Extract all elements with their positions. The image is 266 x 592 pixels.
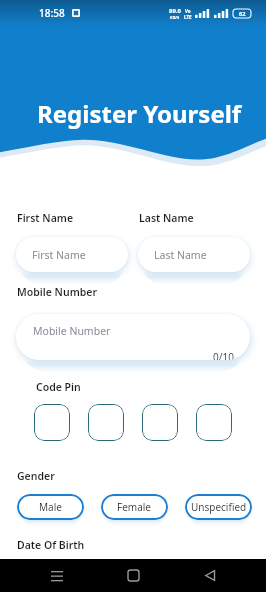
staticText: Vo: [185, 8, 191, 14]
staticText: Register Yourself: [37, 97, 242, 130]
staticText: Unspecified: [191, 500, 247, 514]
staticText: LTE: [184, 14, 192, 20]
staticText: 89.0: [169, 7, 181, 15]
staticText: KB/S: [170, 15, 180, 20]
button[interactable]: Female: [101, 494, 168, 520]
button[interactable]: Male: [17, 494, 84, 520]
button[interactable]: Mobile Number: [16, 314, 250, 360]
staticText: Last Name: [154, 248, 207, 262]
button[interactable]: [196, 404, 232, 441]
button[interactable]: [88, 404, 124, 441]
button[interactable]: First Name: [16, 237, 128, 272]
staticText: Date Of Birth: [17, 538, 85, 552]
button[interactable]: [34, 404, 70, 441]
button[interactable]: Home: [113, 559, 153, 592]
staticText: Code Pin: [36, 380, 81, 394]
staticText: Gender: [17, 469, 55, 483]
staticText: Female: [117, 500, 152, 514]
staticText: Last Name: [139, 211, 194, 225]
staticText: Mobile Number: [33, 324, 111, 338]
staticText: First Name: [32, 248, 86, 262]
button[interactable]: Unspecified: [185, 494, 252, 520]
button[interactable]: Recent apps: [37, 559, 77, 592]
staticText: Mobile Number: [17, 285, 97, 299]
staticText: First Name: [17, 211, 74, 225]
staticText: 18:58: [39, 6, 65, 20]
button[interactable]: [142, 404, 178, 441]
button[interactable]: Back: [190, 559, 230, 592]
button[interactable]: Last Name: [138, 237, 250, 272]
staticText: 62: [239, 10, 246, 17]
staticText: Male: [39, 500, 62, 514]
staticText: 0/10: [213, 350, 234, 360]
